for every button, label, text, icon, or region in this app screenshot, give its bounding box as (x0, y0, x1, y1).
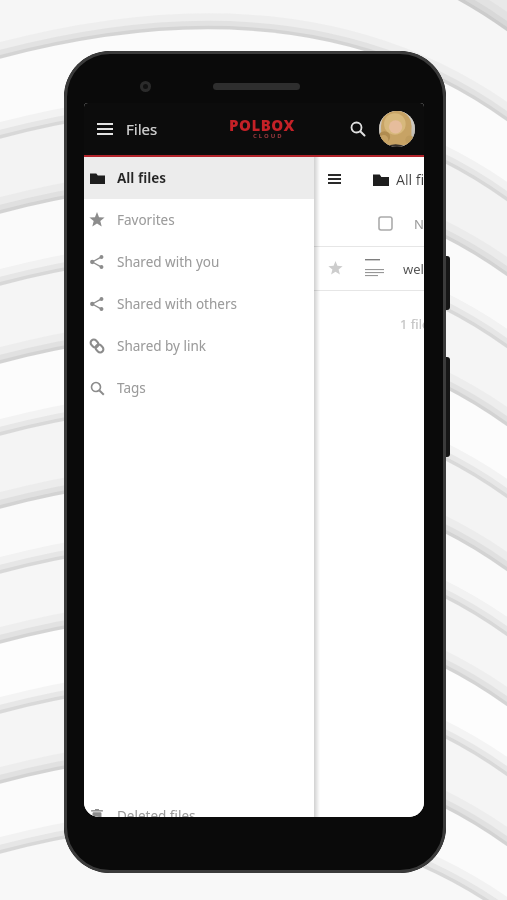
button[interactable]: Deleted files (84, 806, 314, 817)
button[interactable]: Shared with you (84, 241, 314, 283)
button[interactable]: Shared with others (84, 283, 314, 325)
button[interactable]: All files (84, 157, 314, 199)
button[interactable] (348, 119, 368, 139)
staticText: Tags (117, 379, 146, 397)
staticText: Name (414, 215, 424, 233)
staticText: Shared by link (117, 337, 207, 355)
staticText: CLOUD (253, 132, 284, 140)
staticText: Shared with others (117, 295, 237, 313)
staticText: welcome.pdf (403, 260, 424, 278)
button[interactable]: Tags (84, 367, 314, 409)
button[interactable] (93, 117, 117, 141)
staticText: Deleted files (117, 807, 196, 817)
staticText: 1 files (400, 315, 424, 333)
staticText: Shared with you (117, 253, 220, 271)
staticText: Files (126, 119, 158, 139)
staticText: POLBOX (229, 115, 295, 135)
staticText: Favorites (117, 211, 175, 229)
button[interactable]: Shared by link (84, 325, 314, 367)
button[interactable]: Favorites (84, 199, 314, 241)
staticText: All files (396, 170, 424, 189)
staticText: All files (117, 169, 167, 187)
button[interactable] (379, 111, 415, 147)
button[interactable]: POLBOX (229, 115, 295, 143)
